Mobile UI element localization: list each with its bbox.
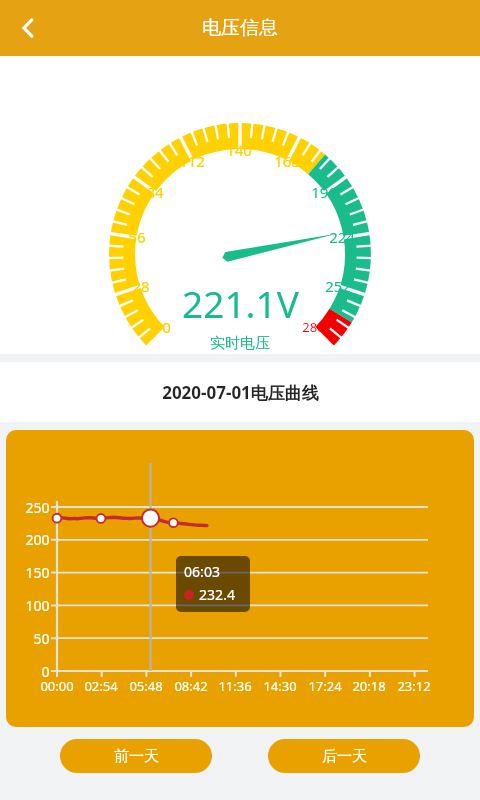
staticText: 252 — [325, 276, 351, 296]
staticText: 28 — [132, 276, 150, 296]
staticText: 前一天 — [114, 747, 159, 766]
staticText: 08:42 — [174, 677, 208, 695]
staticText: 0 — [41, 662, 50, 680]
staticText: 17:24 — [308, 677, 342, 695]
staticText: 14:30 — [263, 677, 297, 695]
staticText: 100 — [25, 596, 50, 614]
staticText: 232.4 — [199, 585, 235, 604]
staticText: 150 — [25, 563, 50, 581]
staticText: 00:00 — [40, 677, 74, 695]
staticText: 后一天 — [322, 747, 367, 766]
staticText: 电压信息 — [202, 16, 278, 40]
button[interactable]: 前一天 — [60, 739, 212, 773]
staticText: 50 — [33, 629, 50, 647]
staticText: 06:03 — [184, 562, 220, 581]
staticText: 280 — [302, 318, 325, 336]
staticText: 02:54 — [84, 677, 118, 695]
staticText: 84 — [146, 182, 164, 202]
button[interactable]: 后一天 — [268, 739, 420, 773]
staticText: 168 — [274, 151, 300, 171]
staticText: 221.1V — [182, 278, 299, 328]
staticText: 实时电压 — [210, 334, 270, 353]
staticText: 250 — [25, 498, 50, 516]
staticText: 11:36 — [218, 677, 252, 695]
staticText: 224 — [329, 227, 355, 247]
staticText: 05:48 — [129, 677, 163, 695]
staticText: 0 — [162, 317, 171, 337]
staticText: 2020-07-01电压曲线 — [162, 381, 319, 404]
staticText: 20:18 — [352, 677, 386, 695]
button[interactable]: Back — [6, 6, 50, 50]
staticText: 140 — [226, 140, 252, 160]
staticText: 196 — [311, 182, 337, 202]
staticText: 23:12 — [397, 677, 431, 695]
staticText: 200 — [25, 530, 50, 548]
staticText: 112 — [179, 151, 205, 171]
staticText: 56 — [128, 227, 146, 247]
